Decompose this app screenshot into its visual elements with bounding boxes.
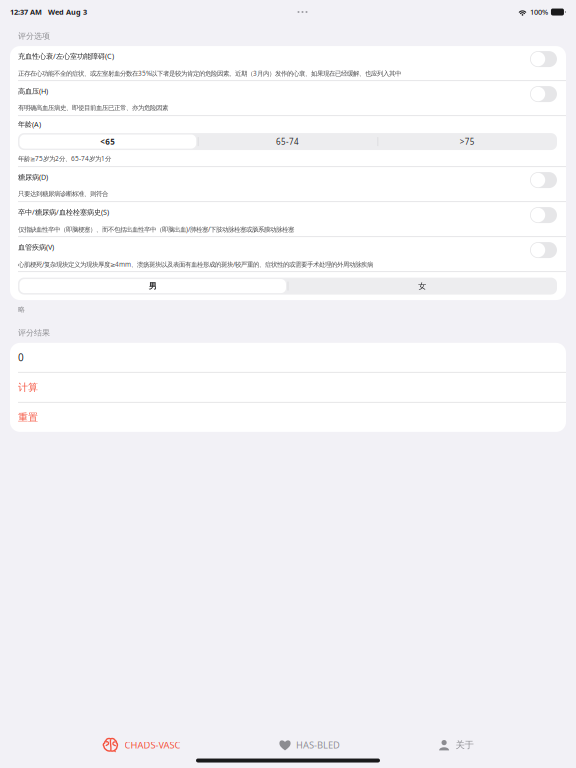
button[interactable]: 血管疾病(V) [530,242,557,258]
staticText: 100% [530,7,548,17]
staticText: CHADS-VASC [124,739,180,751]
button[interactable]: 充血性心衰/左心室功能障碍(C) [530,51,557,67]
staticText: 略 [18,305,25,314]
staticText: 年龄≥75岁为2分、65-74岁为1分 [18,154,111,163]
staticText: 评分选项 [18,31,50,41]
staticText: 心肌梗死/复杂现块定义为现块厚度≥4mm、溃疡斑块以及表面有血栓形成的斑块/较严… [18,260,373,269]
button[interactable]: 卒中/糖尿病/血栓栓塞病史(S) [530,207,557,223]
staticText: 正存在心功能不全的症状、或左室射血分数在35%以下者是较为肯定的危险因素。近期（… [18,69,401,78]
staticText: 12:37 AM Wed Aug 3 [10,7,87,17]
staticText: 充血性心衰/左心室功能障碍(C) [18,51,114,61]
staticText: 评分结果 [18,328,50,338]
button[interactable]: 计算 [10,373,566,402]
staticText: 只要达到糖尿病诊断标准、则符合 [18,190,108,198]
button[interactable]: <65 [18,133,198,150]
staticText: 高血压(H) [18,86,48,96]
button[interactable]: 关于 [438,730,473,760]
staticText: 血管疾病(V) [18,242,54,252]
button[interactable]: 男 [18,278,287,295]
staticText: 卒中/糖尿病/血栓栓塞病史(S) [18,207,109,217]
button[interactable]: 65-74 [198,133,377,150]
staticText: 0 [18,351,24,364]
staticText: 重置 [18,411,38,424]
button[interactable]: HAS-BLED [279,730,340,760]
button[interactable]: CHADS-VASC [102,730,180,760]
staticText: >75 [460,136,475,147]
staticText: 仅指缺血性卒中（即脑梗塞）、而不包括出血性卒中（即脑出血)/肺栓塞/下肢动脉栓塞… [18,225,294,234]
staticText: 关于 [455,739,473,751]
staticText: 有明确高血压病史、即使目前血压已正常、亦为危险因素 [18,104,168,112]
button[interactable]: 重置 [10,403,566,432]
staticText: 计算 [18,381,38,394]
button[interactable]: 糖尿病(D) [530,172,557,188]
staticText: 年龄(A) [18,119,41,129]
staticText: 65-74 [276,136,299,147]
staticText: 女 [418,281,426,291]
staticText: 男 [149,281,157,291]
staticText: HAS-BLED [296,739,340,751]
button[interactable]: >75 [377,133,557,150]
staticText: <65 [100,136,115,147]
button[interactable]: 女 [287,278,557,295]
staticText: 糖尿病(D) [18,172,48,182]
button[interactable]: 高血压(H) [530,86,557,102]
